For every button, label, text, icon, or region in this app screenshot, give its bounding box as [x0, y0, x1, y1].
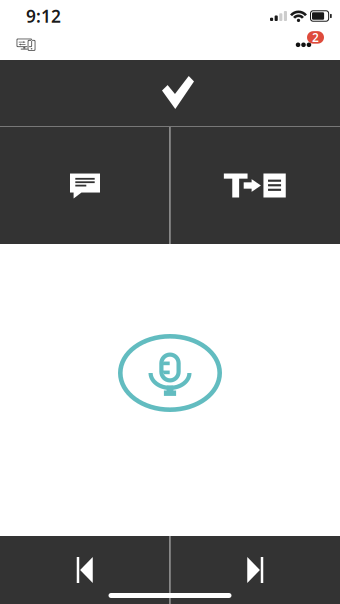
staticText: 9:12: [26, 4, 61, 27]
staticText: 2: [312, 29, 319, 45]
button[interactable]: Continuity: [6, 30, 46, 60]
button[interactable]: Transcribe to document: [170, 127, 340, 244]
button[interactable]: Previous: [0, 536, 169, 604]
button[interactable]: Accept: [0, 60, 340, 126]
button[interactable]: Next: [170, 536, 340, 604]
button[interactable]: Record: [110, 325, 230, 421]
button[interactable]: Comment: [0, 127, 169, 244]
button[interactable]: More options, 2 notifications: [279, 30, 325, 60]
